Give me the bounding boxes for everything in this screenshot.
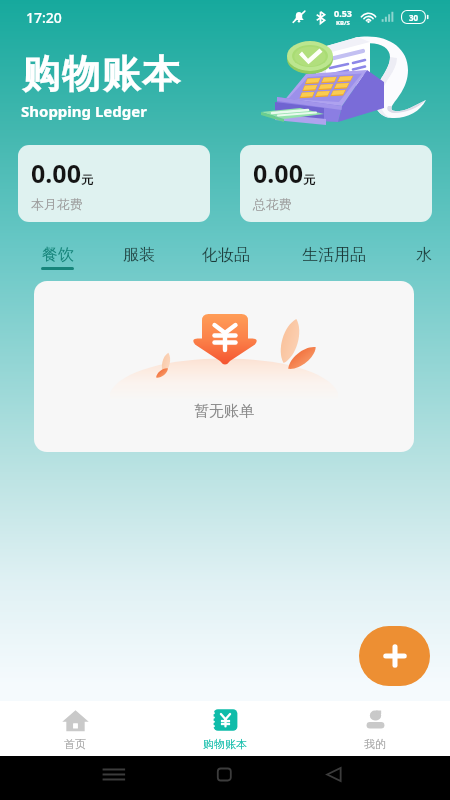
staticText: 17:20: [26, 8, 62, 27]
staticText: 元: [303, 172, 315, 187]
button[interactable]: Add expense: [359, 626, 430, 686]
button[interactable]: 首页: [0, 701, 150, 756]
button[interactable]: 0.00: [18, 145, 210, 222]
staticText: 总花费: [253, 196, 292, 212]
staticText: 购物账本: [203, 737, 247, 751]
staticText: 暂无账单: [194, 402, 254, 421]
staticText: 生活用品: [302, 245, 366, 265]
button[interactable]: 0.00: [240, 145, 432, 222]
staticText: 我的: [364, 737, 386, 751]
button[interactable]: 购物账本: [150, 701, 300, 756]
staticText: 首页: [64, 737, 86, 751]
staticText: 0.00: [31, 156, 81, 190]
staticText: 服装: [123, 245, 155, 265]
staticText: 本月花费: [31, 196, 83, 212]
staticText: 0.53: [334, 7, 352, 19]
staticText: 元: [81, 172, 93, 187]
button[interactable]: 餐饮: [41, 245, 74, 270]
button[interactable]: 生活用品: [302, 245, 366, 265]
staticText: 化妆品: [202, 245, 250, 265]
staticText: 餐饮: [42, 245, 74, 265]
button[interactable]: 服装: [123, 245, 155, 265]
staticText: Shopping Ledger: [21, 101, 147, 121]
button[interactable]: 水: [416, 245, 432, 265]
staticText: 购物账本: [21, 50, 181, 98]
staticText: 0.00: [253, 156, 303, 190]
button[interactable]: 我的: [300, 701, 450, 756]
button[interactable]: 暂无账单: [34, 281, 414, 452]
staticText: KB/S: [336, 19, 350, 27]
button[interactable]: 化妆品: [202, 245, 250, 265]
staticText: 水: [416, 245, 432, 265]
staticText: 30: [409, 12, 419, 23]
